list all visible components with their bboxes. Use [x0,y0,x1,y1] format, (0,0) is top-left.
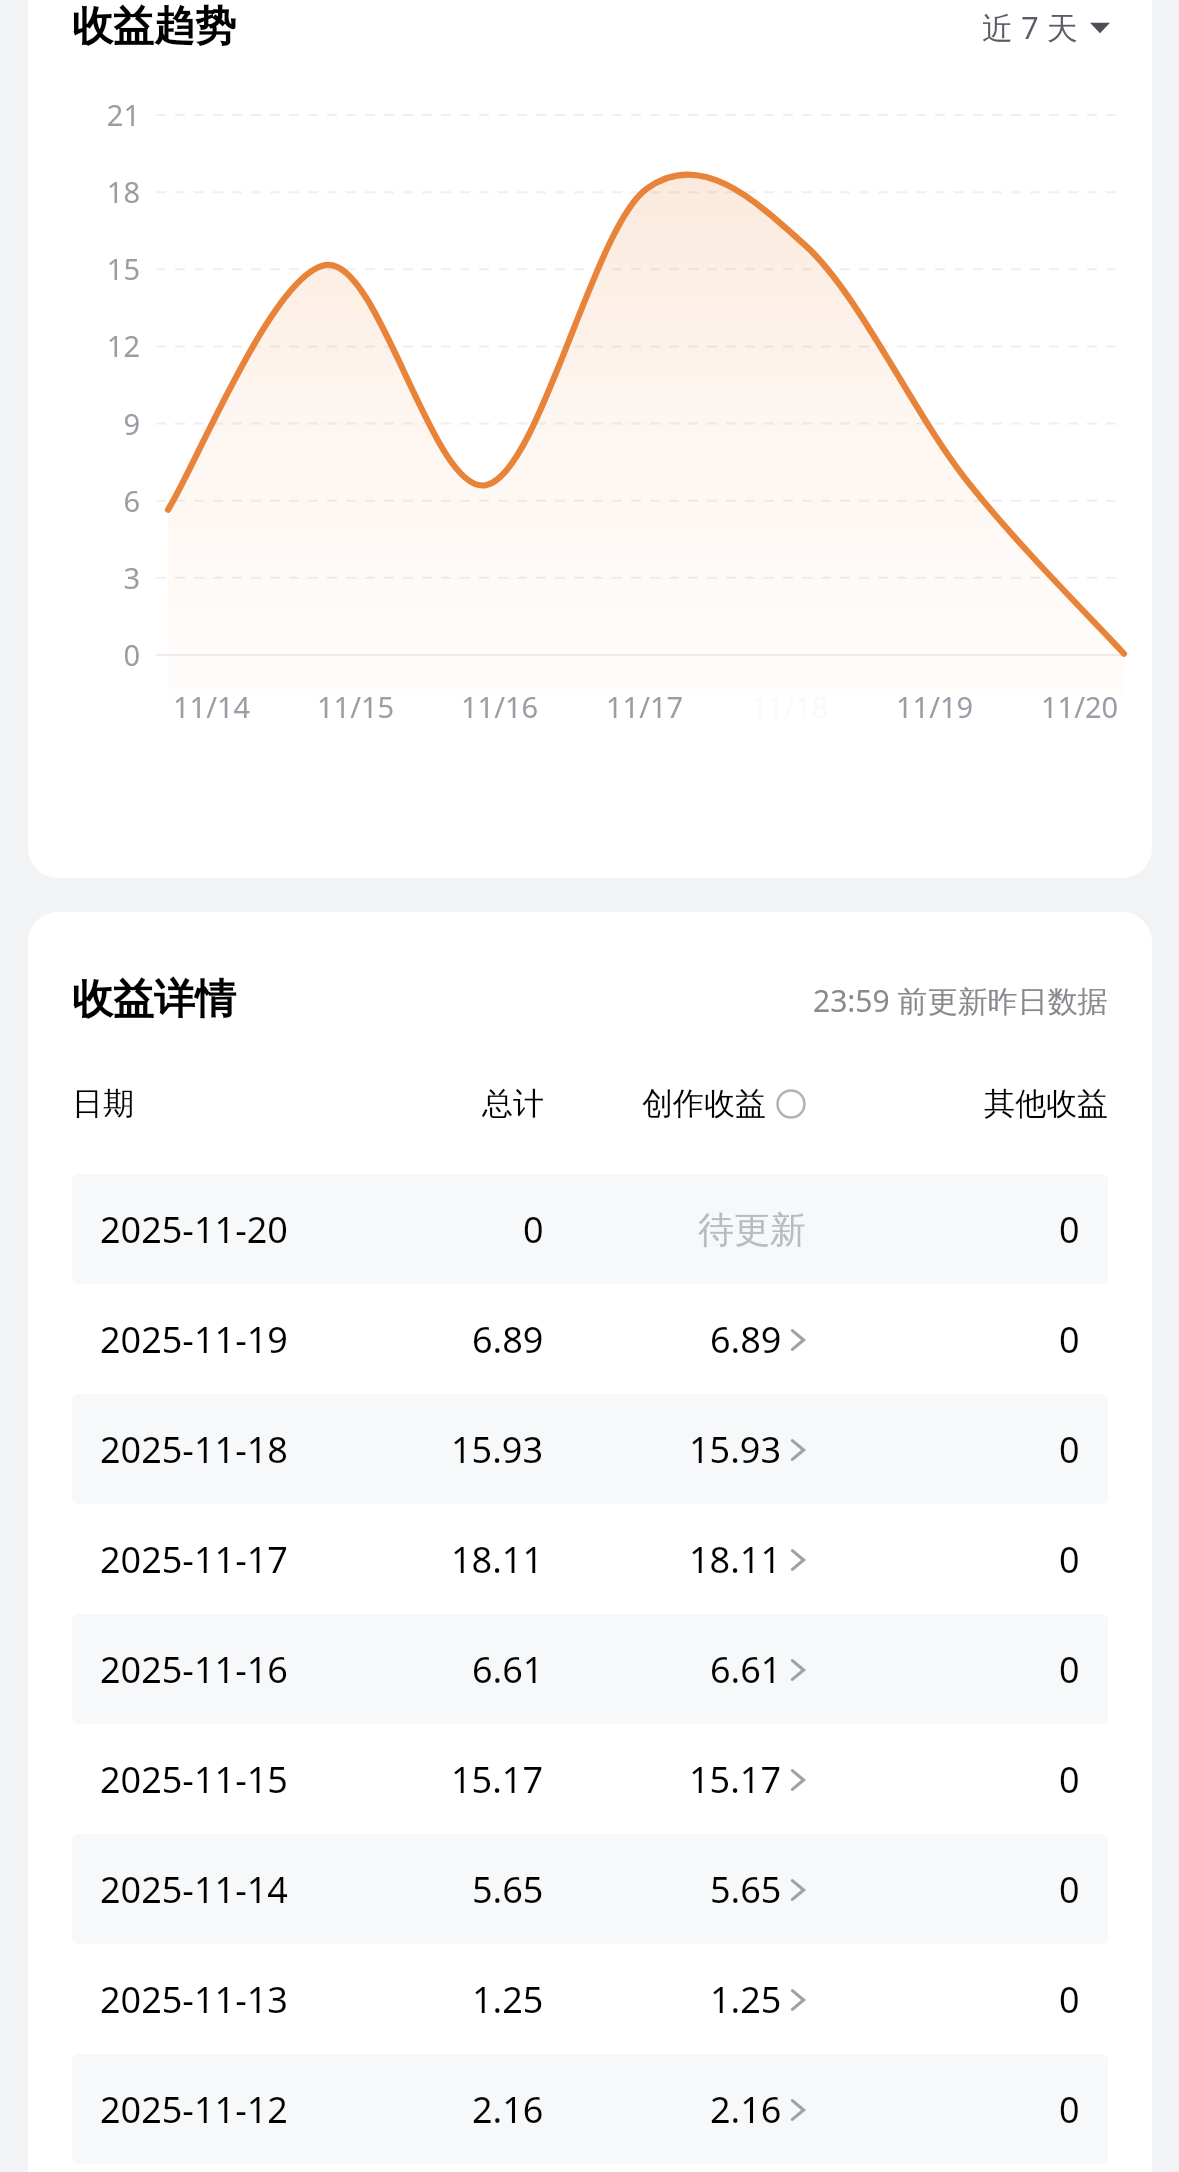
staticText: 6.61 [710,1645,782,1694]
staticText: 21 [106,95,140,134]
staticText: 2025-11-18 [100,1425,288,1474]
button[interactable]: 2025-11-15 [72,1724,1108,1834]
button[interactable]: 2025-11-18 [72,1394,1108,1504]
staticText: 2025-11-15 [100,1755,288,1804]
staticText: 2025-11-12 [100,2085,288,2134]
staticText: 0 [1059,1865,1080,1914]
staticText: 0 [1059,1645,1080,1694]
staticText: 6.61 [472,1645,544,1694]
staticText: 11/15 [317,687,395,726]
staticText: 6 [123,481,140,520]
staticText: 18 [106,172,140,211]
staticText: 2025-11-14 [100,1865,288,1914]
staticText: 15.17 [451,1755,544,1804]
staticText: 0 [1059,2085,1080,2134]
staticText: 0 [523,1205,544,1254]
staticText: 9 [123,404,140,443]
staticText: 11/14 [173,687,251,726]
staticText: 2.16 [472,2085,544,2134]
staticText: 2025-11-16 [100,1645,288,1694]
staticText: 2025-11-13 [100,1975,288,2024]
staticText: 日期 [72,1084,134,1123]
button[interactable]: 2025-11-19 [72,1284,1108,1394]
staticText: 创作收益 [642,1084,766,1123]
staticText: 近 7 天 [982,6,1078,48]
staticText: 12 [106,326,140,365]
staticText: 收益趋势 [72,1,236,53]
staticText: 0 [1059,1205,1080,1254]
staticText: 0 [1059,1535,1080,1584]
button[interactable]: 创作收益说明 [642,1084,806,1123]
button[interactable]: 2025-11-16 [72,1614,1108,1724]
staticText: 15.93 [689,1425,782,1474]
staticText: 2025-11-20 [100,1205,288,1254]
staticText: 总计 [482,1084,544,1123]
staticText: 0 [1059,1315,1080,1364]
staticText: 0 [1059,1975,1080,2024]
button[interactable]: 2025-11-12 [72,2054,1108,2164]
staticText: 待更新 [698,1207,806,1252]
button[interactable]: 2025-11-20 [72,1174,1108,1284]
staticText: 18.11 [689,1535,782,1584]
staticText: 2025-11-19 [100,1315,288,1364]
button[interactable]: 近 7 天 [976,0,1116,54]
staticText: 0 [123,635,140,674]
staticText: 3 [123,558,140,597]
staticText: 23:59 前更新昨日数据 [813,980,1108,1021]
staticText: 0 [1059,1755,1080,1804]
staticText: 6.89 [472,1315,544,1364]
staticText: 15.93 [451,1425,544,1474]
staticText: 6.89 [710,1315,782,1364]
staticText: 1.25 [472,1975,544,2024]
staticText: 收益详情 [72,974,236,1026]
staticText: 18.11 [451,1535,544,1584]
staticText: 11/20 [1041,687,1119,726]
staticText: 5.65 [710,1865,782,1914]
staticText: 5.65 [472,1865,544,1914]
staticText: 15.17 [689,1755,782,1804]
button[interactable]: 2025-11-17 [72,1504,1108,1614]
staticText: 其他收益 [984,1084,1108,1123]
staticText: 2.16 [710,2085,782,2134]
button[interactable]: 2025-11-14 [72,1834,1108,1944]
staticText: 0 [1059,1425,1080,1474]
staticText: 11/16 [461,687,539,726]
staticText: 2025-11-17 [100,1535,288,1584]
staticText: 15 [106,249,140,288]
staticText: 1.25 [710,1975,782,2024]
button[interactable]: 2025-11-13 [72,1944,1108,2054]
staticText: 11/19 [896,687,974,726]
staticText: 11/17 [606,687,684,726]
